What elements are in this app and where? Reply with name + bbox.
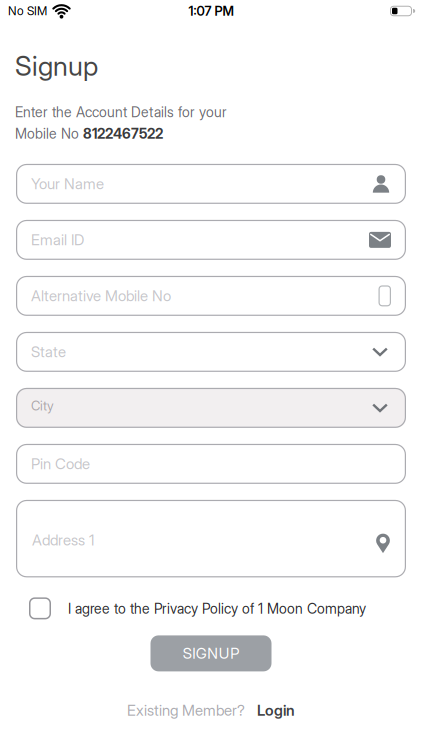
staticText: 8122467522 [83,125,163,142]
staticText: State [31,343,66,361]
staticText: Your Name [31,175,104,193]
button[interactable]: Pin Code [16,444,406,484]
button[interactable]: I agree to the Privacy Policy of 1 Moon … [0,597,366,619]
staticText: Pin Code [31,455,90,473]
staticText: Existing Member? [127,701,245,719]
staticText: SIGNUP [183,644,239,662]
staticText: Mobile No [15,125,83,142]
staticText: Enter the Account Details for your [15,104,227,120]
staticText: Address 1 [32,531,94,549]
staticText: I agree to the Privacy Policy of 1 Moon … [68,600,366,617]
button[interactable]: Alternative Mobile No [16,276,406,316]
button[interactable]: Email ID [16,220,406,260]
button[interactable]: State [16,332,406,372]
button[interactable]: Login [257,701,295,719]
button[interactable]: Your Name [16,164,406,204]
staticText: Login [257,701,295,719]
staticText: Signup [15,50,98,82]
staticText: No SIM [8,4,47,18]
staticText: Alternative Mobile No [31,287,171,305]
button[interactable]: SIGNUP [150,635,271,671]
button[interactable]: City [16,388,406,428]
staticText: Email ID [31,231,84,249]
staticText: City [31,398,54,413]
staticText: 1:07 PM [188,3,233,19]
button[interactable]: Address 1 [16,500,406,577]
